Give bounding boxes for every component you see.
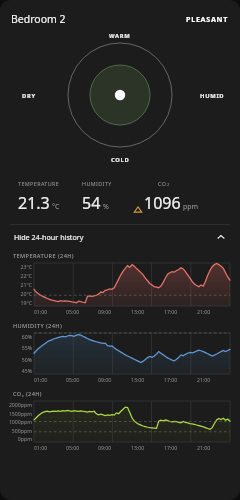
staticText: 23°C bbox=[20, 263, 32, 270]
staticText: 1096 bbox=[144, 192, 181, 214]
staticText: Hide 24-hour history bbox=[14, 232, 84, 242]
staticText: 17:00 bbox=[164, 376, 178, 383]
staticText: 55% bbox=[21, 344, 32, 351]
staticText: 0ppm bbox=[17, 435, 32, 442]
staticText: 05:00 bbox=[66, 444, 80, 451]
staticText: 01:00 bbox=[34, 376, 48, 383]
other: Warning bbox=[134, 206, 142, 213]
staticText: 09:00 bbox=[98, 444, 112, 451]
staticText: HUMIDITY (24H) bbox=[13, 322, 63, 330]
staticText: 60% bbox=[21, 333, 32, 340]
staticText: 21:00 bbox=[197, 308, 211, 315]
staticText: 54 bbox=[82, 192, 101, 214]
staticText: 1500ppm bbox=[8, 410, 32, 417]
staticText: 13:00 bbox=[131, 376, 145, 383]
staticText: CO₂ (24H) bbox=[13, 390, 42, 398]
staticText: 45% bbox=[21, 367, 32, 374]
staticText: 500ppm bbox=[11, 427, 32, 434]
staticText: DRY bbox=[22, 92, 36, 100]
staticText: 21:00 bbox=[197, 376, 211, 383]
staticText: % bbox=[103, 202, 109, 212]
staticText: TEMPERATURE (24H) bbox=[13, 252, 74, 260]
staticText: Bedroom 2 bbox=[11, 12, 66, 26]
staticText: 20°C bbox=[20, 290, 32, 297]
staticText: 09:00 bbox=[98, 308, 112, 315]
staticText: 05:00 bbox=[66, 376, 80, 383]
staticText: HUMID bbox=[200, 92, 225, 100]
staticText: 21°C bbox=[20, 281, 32, 288]
staticText: 1000ppm bbox=[8, 418, 32, 425]
staticText: 2000ppm bbox=[8, 401, 32, 408]
staticText: ppm bbox=[183, 202, 199, 212]
staticText: 2 bbox=[167, 182, 170, 187]
staticText: 21.3 bbox=[18, 192, 50, 214]
staticText: 05:00 bbox=[66, 308, 80, 315]
staticText: TEMPERATURE bbox=[18, 180, 60, 187]
staticText: 17:00 bbox=[164, 308, 178, 315]
staticText: 19°C bbox=[20, 299, 32, 306]
staticText: 22°C bbox=[20, 272, 32, 279]
staticText: 13:00 bbox=[131, 308, 145, 315]
staticText: °C bbox=[52, 202, 60, 212]
staticText: COLD bbox=[111, 156, 130, 164]
staticText: PLEASANT bbox=[186, 14, 229, 24]
staticText: 50% bbox=[21, 356, 32, 363]
staticText: HUMIDITY bbox=[82, 180, 112, 187]
staticText: 17:00 bbox=[164, 444, 178, 451]
staticText: 01:00 bbox=[34, 444, 48, 451]
other: Collapse history bbox=[216, 232, 226, 242]
staticText: CO bbox=[158, 180, 167, 187]
staticText: 01:00 bbox=[34, 308, 48, 315]
staticText: 21:00 bbox=[197, 444, 211, 451]
button[interactable]: Hide 24-hour history bbox=[0, 225, 240, 249]
staticText: 13:00 bbox=[131, 444, 145, 451]
staticText: WARM bbox=[109, 32, 131, 40]
staticText: 09:00 bbox=[98, 376, 112, 383]
